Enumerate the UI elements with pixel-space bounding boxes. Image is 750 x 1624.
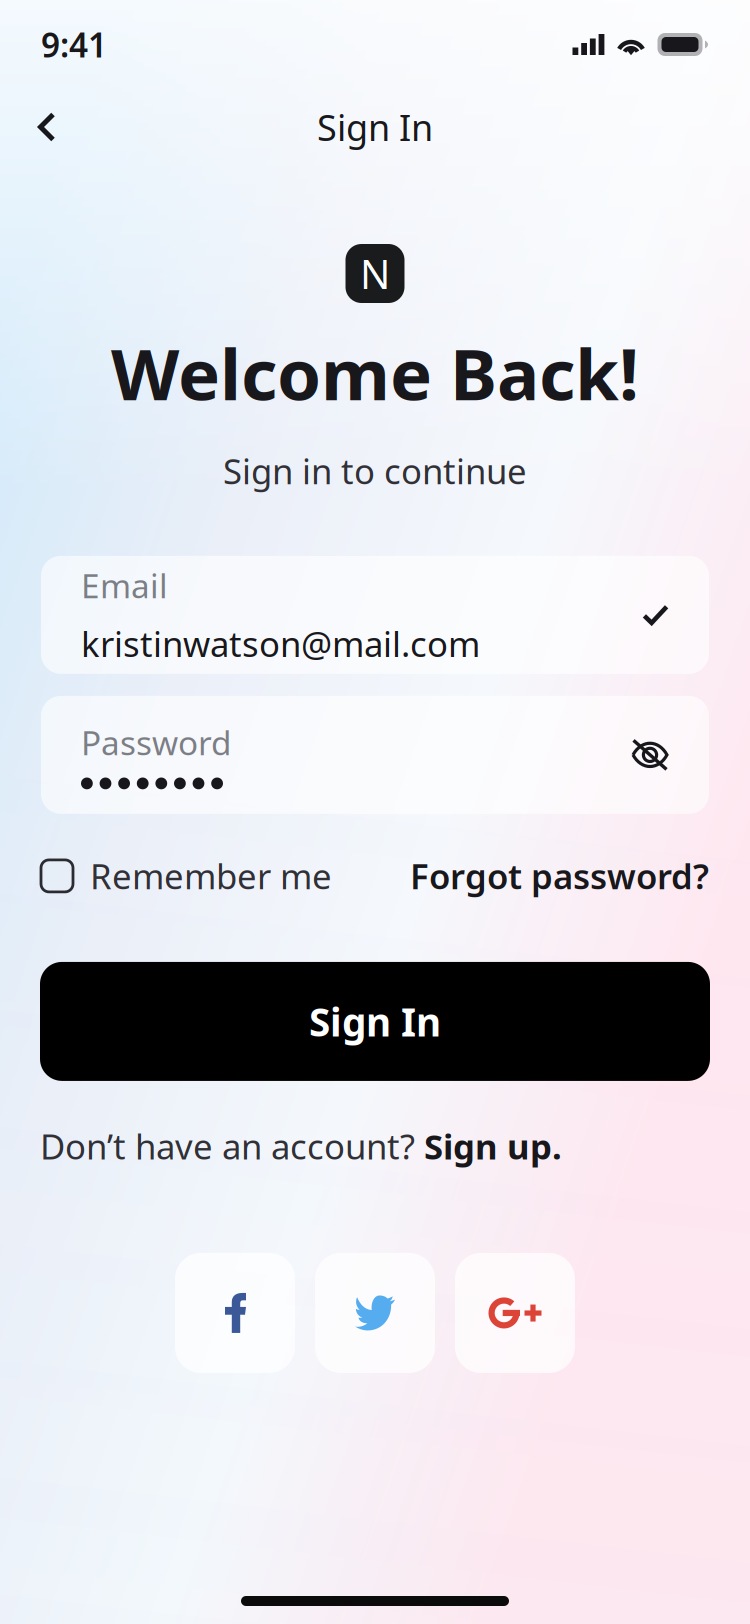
button[interactable]: Back	[16, 96, 78, 158]
staticText: Don’t have an account?	[40, 1123, 424, 1169]
button[interactable]: Sign in with Google	[455, 1253, 575, 1373]
staticText: Sign In	[309, 996, 441, 1047]
staticText: Forgot password?	[410, 853, 709, 899]
staticText: N	[360, 247, 390, 300]
button[interactable]: Sign in with Twitter	[315, 1253, 435, 1373]
staticText: Remember me	[90, 853, 332, 899]
button[interactable]: Sign up.	[424, 1123, 562, 1169]
staticText: Sign in to continue	[223, 448, 527, 494]
staticText: Password	[81, 720, 232, 764]
staticText: Email	[81, 563, 168, 607]
button[interactable]: Forgot password?	[410, 853, 709, 899]
button[interactable]: Sign In	[40, 962, 710, 1081]
staticText: Sign up.	[424, 1123, 562, 1169]
staticText: kristinwatson@mail.com	[81, 620, 480, 666]
button[interactable]: Sign in with Facebook	[175, 1253, 295, 1373]
button[interactable]: Password	[41, 696, 709, 814]
button[interactable]: Remember me	[41, 853, 332, 899]
staticText: Sign In	[317, 103, 433, 151]
staticText: Welcome Back!	[111, 326, 639, 420]
button[interactable]: Email	[41, 556, 709, 674]
staticText: 9:41	[41, 22, 107, 67]
